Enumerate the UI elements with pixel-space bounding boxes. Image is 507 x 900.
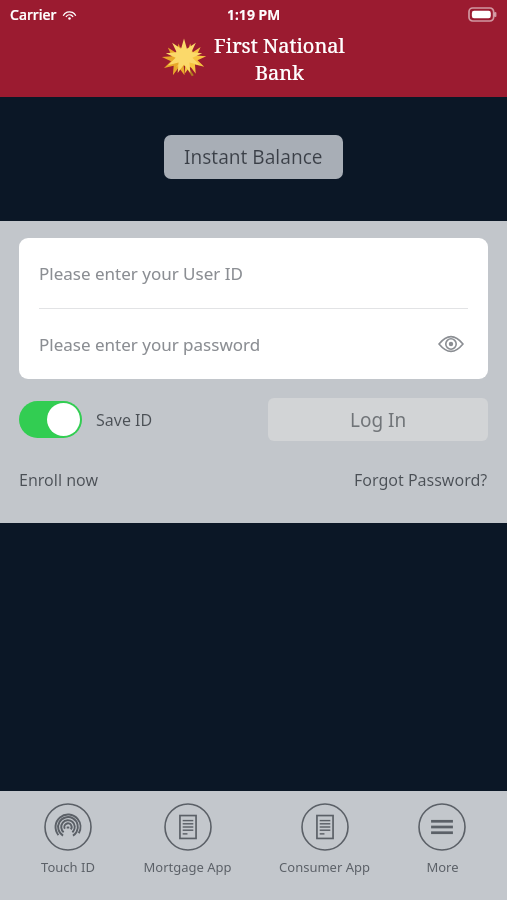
button[interactable]: More	[412, 791, 472, 888]
button[interactable]: Instant Balance	[164, 135, 343, 179]
staticText: Enroll now	[19, 469, 98, 491]
staticText: Bank	[255, 59, 304, 86]
staticText: Consumer App	[279, 858, 370, 876]
staticText: Log In	[350, 407, 407, 433]
staticText: Forgot Password?	[354, 469, 488, 491]
button[interactable]: Mortgage App	[137, 791, 238, 888]
staticText: Please enter your User ID	[39, 262, 243, 285]
staticText: More	[426, 858, 459, 876]
button[interactable]: Save ID	[19, 401, 153, 438]
staticText: Carrier	[10, 5, 57, 24]
staticText: Mortgage App	[143, 858, 232, 876]
button[interactable]: Please enter your User ID	[19, 238, 488, 308]
button[interactable]: Forgot Password?	[354, 469, 488, 491]
button[interactable]: Enroll now	[19, 469, 98, 491]
staticText: Touch ID	[41, 858, 95, 876]
button[interactable]: Please enter your password	[19, 309, 488, 379]
staticText: Please enter your password	[39, 333, 261, 356]
button[interactable]: Touch ID	[35, 791, 101, 888]
staticText: 1:19 PM	[227, 5, 281, 24]
button[interactable]: Consumer App	[273, 791, 376, 888]
button[interactable]: Show password	[434, 327, 468, 361]
button[interactable]: Log In	[268, 398, 488, 441]
staticText: Save ID	[96, 409, 153, 431]
staticText: First National	[214, 32, 345, 59]
staticText: Instant Balance	[184, 144, 323, 170]
